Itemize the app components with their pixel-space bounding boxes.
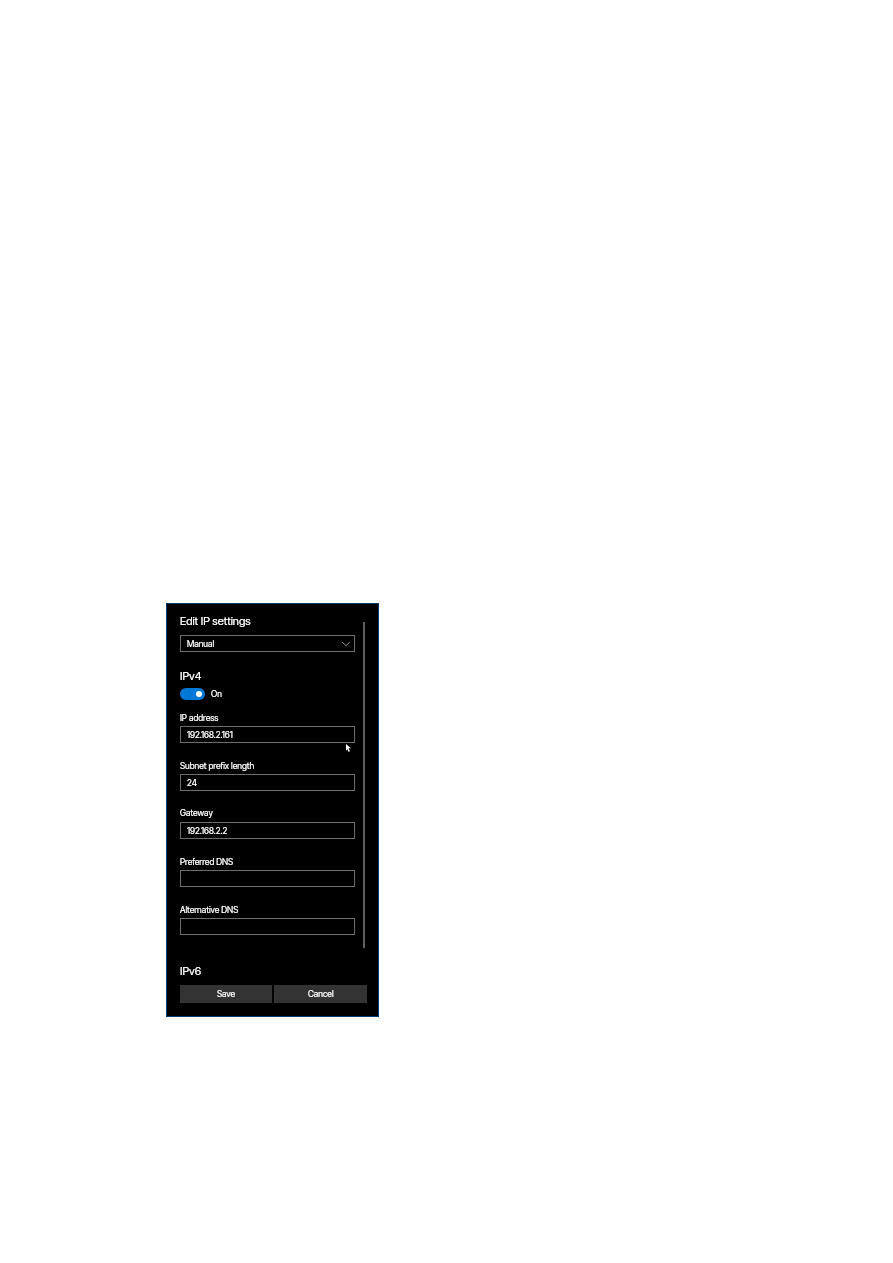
staticText: Alternative DNS <box>180 905 239 915</box>
staticText: 192.168.2.2 <box>187 826 228 836</box>
staticText: IP address <box>180 713 219 723</box>
staticText: 24 <box>187 778 197 788</box>
staticText: Edit IP settings <box>180 614 251 628</box>
button[interactable]: IPv4, On <box>180 688 205 700</box>
staticText: On <box>211 689 222 699</box>
button[interactable]: Cancel <box>274 985 367 1003</box>
button[interactable]: Subnet prefix length <box>180 774 355 791</box>
staticText: IPv4 <box>180 669 202 683</box>
staticText: Cancel <box>308 989 334 999</box>
staticText: 192.168.2.161 <box>187 730 233 740</box>
staticText: Manual <box>187 639 215 649</box>
button[interactable]: IP address <box>180 726 355 743</box>
button[interactable]: Gateway <box>180 822 355 839</box>
button[interactable]: Save <box>180 985 272 1003</box>
button[interactable]: Preferred DNS <box>180 870 355 887</box>
button[interactable]: IP assignment: Manual <box>180 635 355 652</box>
staticText: IPv6 <box>180 964 202 978</box>
staticText: Gateway <box>180 808 213 818</box>
button[interactable]: Alternative DNS <box>180 918 355 935</box>
staticText: Save <box>217 989 236 999</box>
staticText: Subnet prefix length <box>180 761 255 771</box>
staticText: Preferred DNS <box>180 857 234 867</box>
